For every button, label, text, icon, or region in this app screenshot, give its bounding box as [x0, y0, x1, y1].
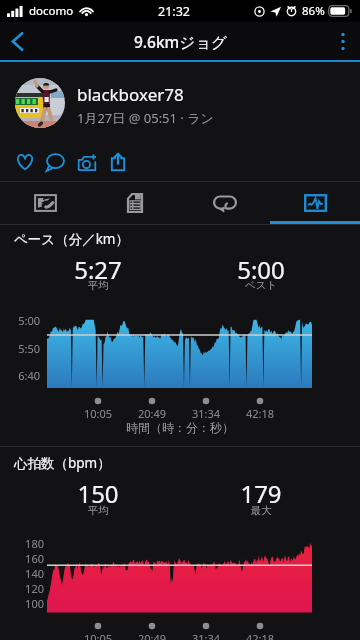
- staticText: blackboxer78: [77, 83, 184, 106]
- staticText: 42:18: [238, 631, 282, 640]
- staticText: 5:50: [8, 341, 40, 356]
- staticText: 179: [201, 477, 321, 510]
- staticText: 平均: [38, 504, 158, 517]
- staticText: 心拍数（bpm）: [14, 454, 111, 472]
- button[interactable]: Like: [9, 144, 40, 180]
- staticText: 20:49: [130, 631, 174, 640]
- staticText: 1月27日 @ 05:51 · ラン: [77, 109, 214, 127]
- staticText: 5:00: [201, 253, 321, 286]
- button[interactable]: Charts: [270, 182, 360, 224]
- staticText: 10:05: [76, 406, 120, 421]
- staticText: 5:27: [38, 253, 158, 286]
- staticText: 5:00: [8, 313, 40, 328]
- button[interactable]: Comment: [40, 144, 71, 180]
- staticText: 時間（時：分：秒）: [0, 420, 360, 435]
- button[interactable]: More options: [326, 22, 360, 60]
- button[interactable]: Back: [0, 22, 34, 60]
- staticText: 180: [8, 536, 44, 551]
- staticText: 31:34: [184, 406, 228, 421]
- staticText: 最大: [201, 504, 321, 517]
- staticText: 100: [8, 596, 44, 611]
- button[interactable]: Map: [0, 182, 90, 224]
- staticText: 120: [8, 581, 44, 596]
- staticText: ベスト: [201, 279, 321, 292]
- staticText: 9.6kmジョグ: [134, 31, 227, 52]
- staticText: 21:32: [158, 3, 190, 20]
- staticText: 150: [38, 477, 158, 510]
- staticText: 42:18: [238, 406, 282, 421]
- staticText: 86%: [302, 3, 325, 19]
- staticText: 20:49: [130, 406, 174, 421]
- staticText: ペース（分／km）: [14, 230, 129, 248]
- button[interactable]: Add photo: [71, 144, 102, 180]
- staticText: 6:40: [8, 368, 40, 383]
- staticText: 31:34: [184, 631, 228, 640]
- staticText: 140: [8, 566, 44, 581]
- staticText: 平均: [38, 279, 158, 292]
- button[interactable]: [15, 78, 65, 128]
- staticText: 160: [8, 551, 44, 566]
- staticText: docomo: [29, 3, 74, 19]
- button[interactable]: Share: [102, 144, 133, 180]
- staticText: 10:05: [76, 631, 120, 640]
- button[interactable]: Laps: [180, 182, 270, 224]
- button[interactable]: Details: [90, 182, 180, 224]
